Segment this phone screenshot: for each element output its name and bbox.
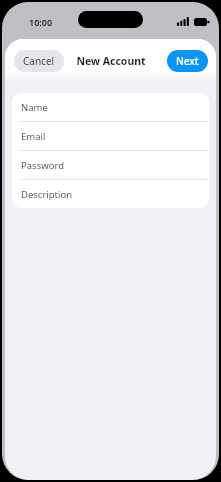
button[interactable]: Name <box>12 93 209 121</box>
staticText: Cancel <box>23 54 55 68</box>
button[interactable]: Password <box>12 151 209 179</box>
staticText: Email <box>21 130 46 143</box>
button[interactable]: Description <box>12 180 209 208</box>
staticText: Description <box>21 188 73 201</box>
staticText: Name <box>21 101 48 114</box>
button[interactable]: Email <box>12 122 209 150</box>
staticText: Next <box>176 54 199 68</box>
staticText: Password <box>21 159 64 172</box>
button[interactable]: Cancel <box>14 50 64 72</box>
staticText: New Account <box>76 54 146 68</box>
button[interactable]: Next <box>167 50 208 72</box>
staticText: 10:00 <box>29 16 53 28</box>
